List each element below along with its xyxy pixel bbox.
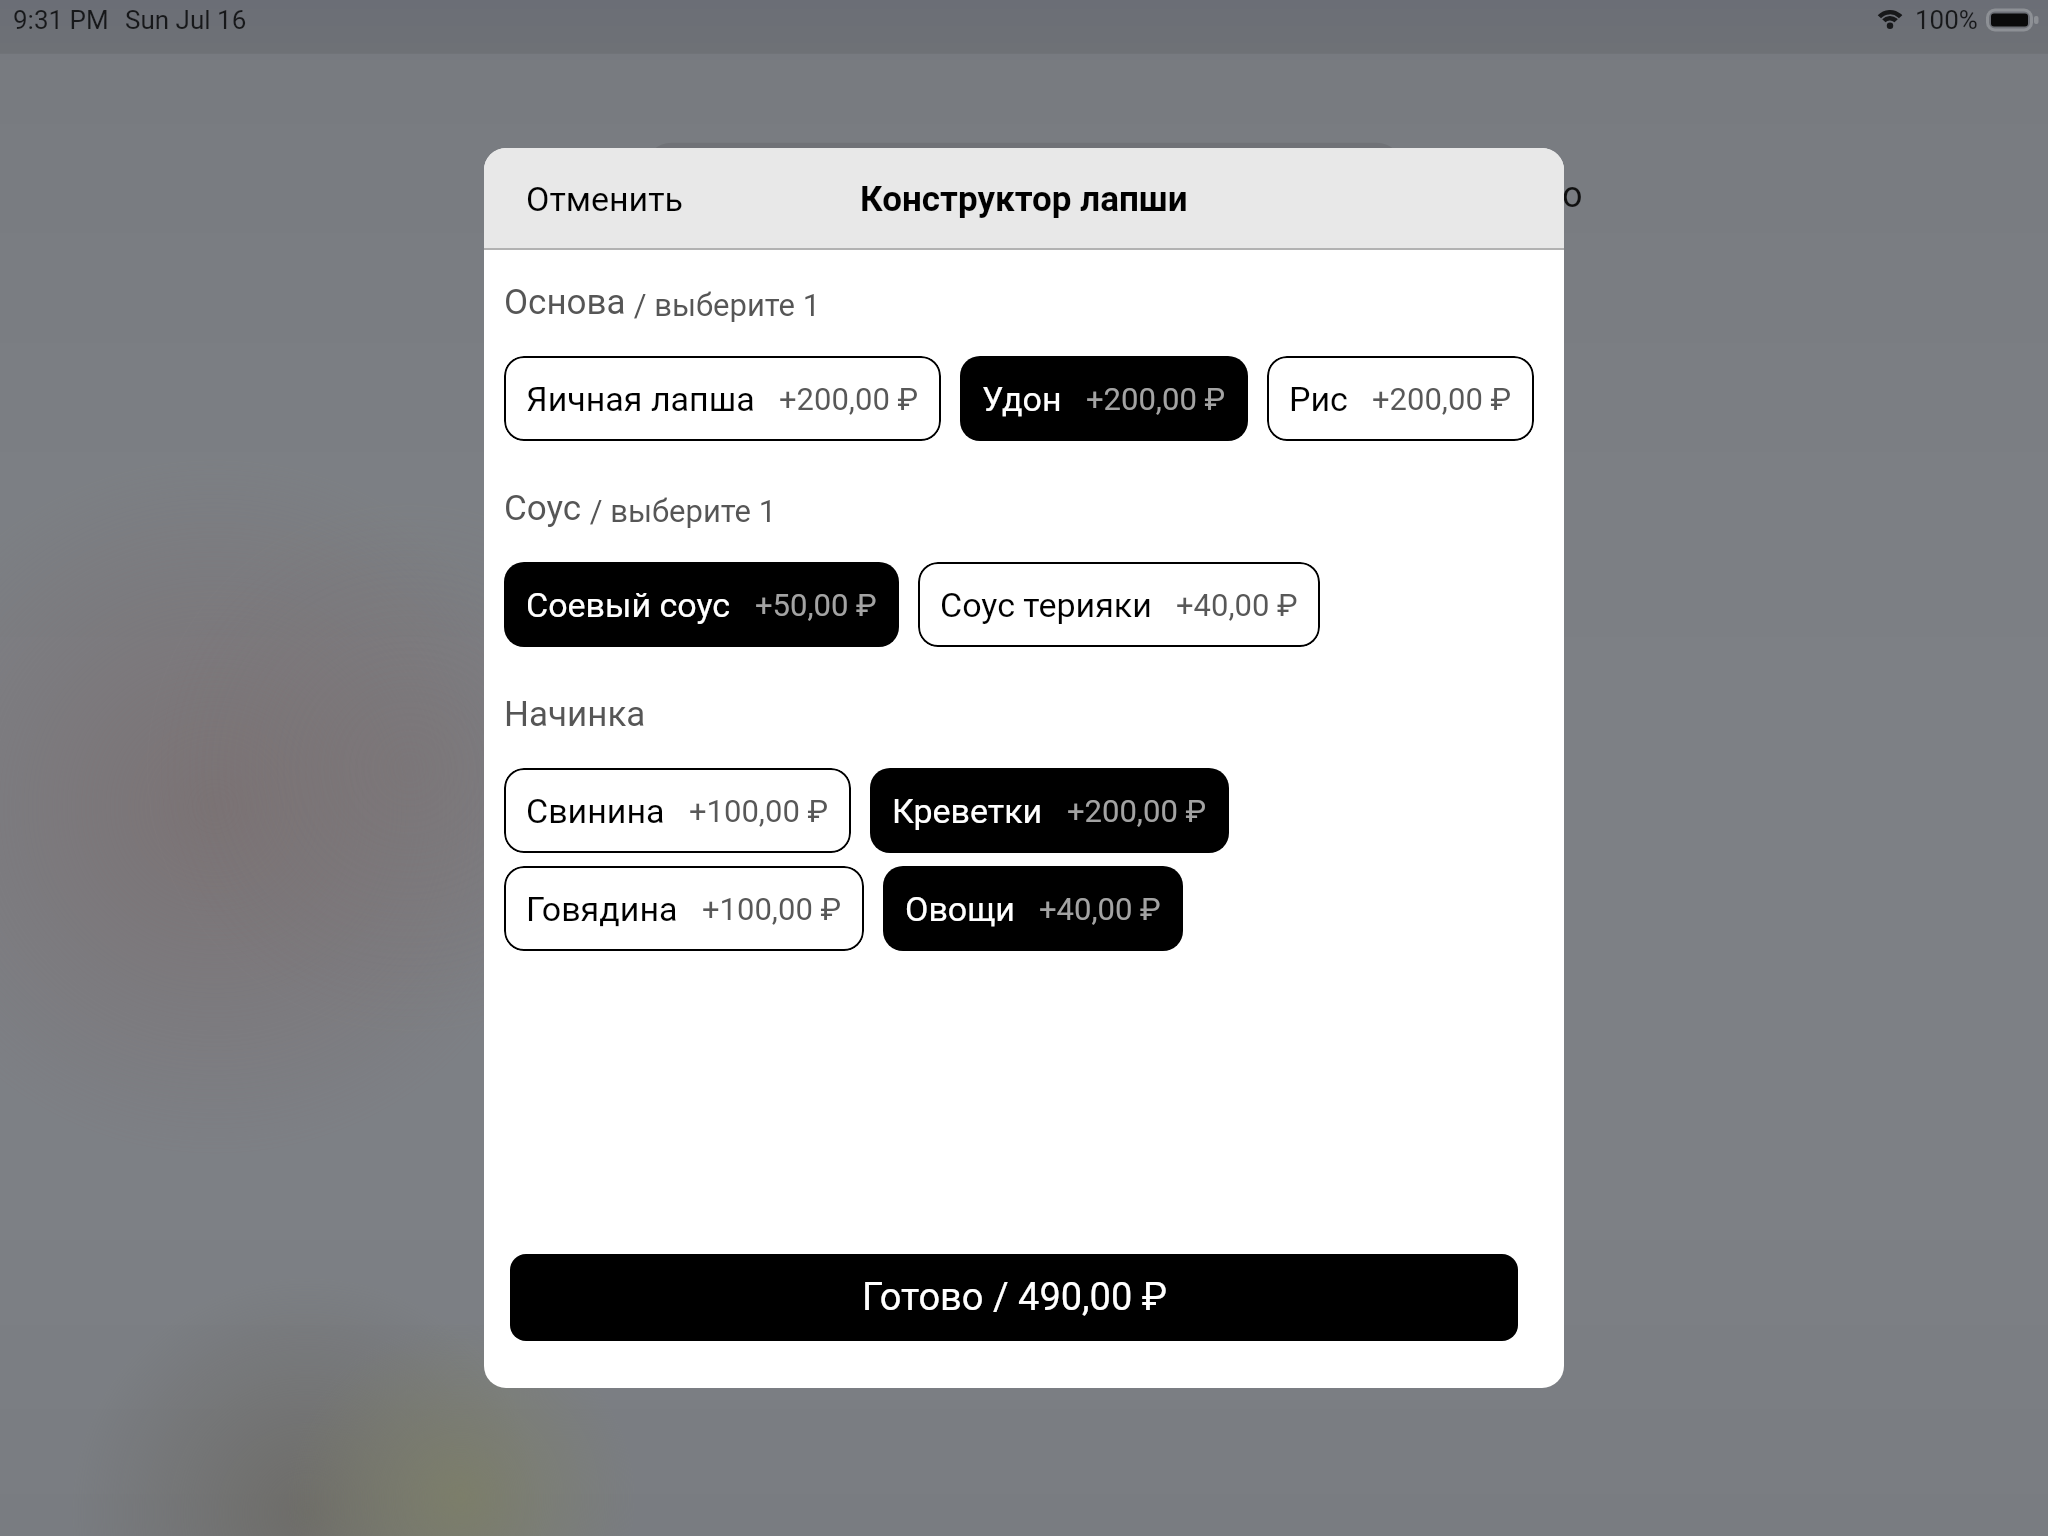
staticText: Рис [1289, 379, 1348, 419]
staticText: Начинка [504, 694, 646, 735]
staticText: Яичная лапша [526, 379, 755, 419]
button[interactable]: Овощи [883, 866, 1183, 951]
staticText: Основа [504, 282, 626, 323]
staticText: Отменить [526, 179, 684, 219]
staticText: Овощи [905, 889, 1015, 929]
staticText: +200,00 ₽ [1086, 381, 1226, 417]
staticText: +200,00 ₽ [779, 381, 919, 417]
button[interactable]: Готово / 490,00 ₽ [510, 1254, 1518, 1341]
other: Battery full [1986, 4, 2038, 36]
staticText: Конструктор лапши [860, 179, 1188, 220]
staticText: Удон [982, 379, 1062, 419]
staticText: +100,00 ₽ [702, 891, 842, 927]
other: Wi-Fi connected [1876, 4, 1904, 36]
staticText: 100% [1915, 5, 1978, 35]
staticText: Говядина [526, 889, 678, 929]
button[interactable]: Соевый соус [504, 562, 899, 647]
staticText: / выберите 1 [582, 493, 777, 529]
staticText: / выберите 1 [626, 287, 821, 323]
staticText: +50,00 ₽ [755, 587, 877, 623]
staticText: Креветки [892, 791, 1043, 831]
button[interactable]: Удон [960, 356, 1248, 441]
button[interactable]: Отменить [484, 165, 708, 233]
button[interactable]: Яичная лапша [504, 356, 941, 441]
staticText: Свинина [526, 791, 665, 831]
staticText: Sun Jul 16 [125, 5, 247, 35]
button[interactable]: Рис [1267, 356, 1534, 441]
staticText: +200,00 ₽ [1372, 381, 1512, 417]
staticText: +40,00 ₽ [1176, 587, 1298, 623]
staticText: +200,00 ₽ [1067, 793, 1207, 829]
staticText: Соус терияки [940, 585, 1152, 625]
staticText: о [1562, 174, 1583, 216]
button[interactable]: Соус терияки [918, 562, 1320, 647]
button[interactable]: Говядина [504, 866, 864, 951]
staticText: Соус [504, 488, 582, 529]
staticText: Готово / 490,00 ₽ [862, 1275, 1167, 1320]
button[interactable]: Креветки [870, 768, 1229, 853]
staticText: 9:31 PM [13, 5, 109, 35]
staticText: +40,00 ₽ [1039, 891, 1161, 927]
button[interactable]: Свинина [504, 768, 851, 853]
staticText: +100,00 ₽ [689, 793, 829, 829]
staticText: Соевый соус [526, 585, 731, 625]
